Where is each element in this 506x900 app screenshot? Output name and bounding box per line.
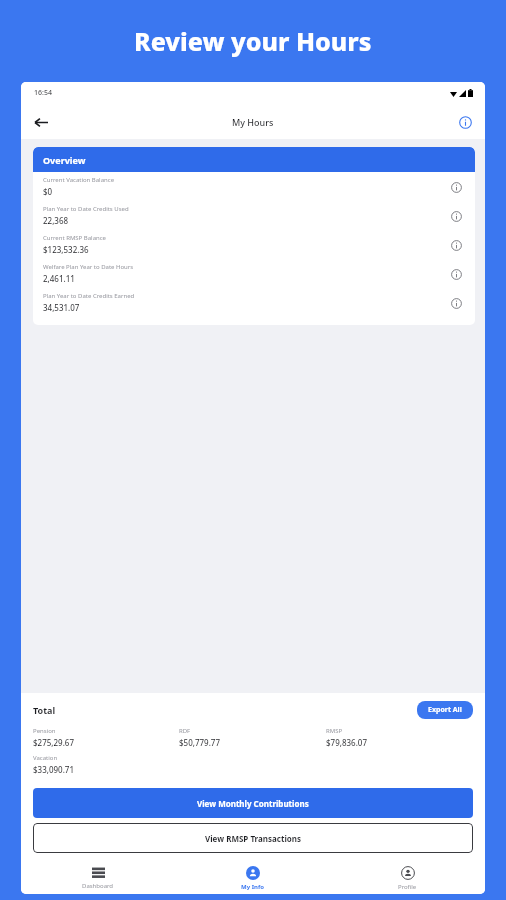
staticText: Current Vacation Balance: [43, 176, 115, 184]
staticText: My Info: [241, 883, 264, 891]
button[interactable]: More info about Welfare Plan Year to Dat…: [447, 265, 465, 283]
staticText: Vacation: [33, 754, 58, 762]
button[interactable]: Export All: [417, 701, 473, 719]
staticText: RMSP: [326, 727, 343, 735]
staticText: RDF: [179, 727, 191, 735]
staticText: $50,779.77: [179, 737, 220, 748]
button[interactable]: More info about Plan Year to Date Credit…: [447, 294, 465, 312]
staticText: Review your Hours: [134, 24, 372, 58]
staticText: Plan Year to Date Credits Earned: [43, 292, 135, 300]
staticText: 22,368: [43, 215, 69, 226]
staticText: Plan Year to Date Credits Used: [43, 205, 129, 213]
staticText: Current RMSP Balance: [43, 234, 106, 242]
button[interactable]: Current RMSP Balance: [33, 230, 475, 259]
staticText: Overview: [43, 154, 86, 166]
button[interactable]: Plan Year to Date Credits Used: [33, 201, 475, 230]
staticText: 16:54: [34, 88, 52, 98]
staticText: $0: [43, 186, 53, 197]
button[interactable]: View Monthly Contributions: [33, 788, 473, 818]
button[interactable]: Current Vacation Balance: [33, 172, 475, 201]
button[interactable]: Plan Year to Date Credits Earned: [33, 288, 475, 317]
staticText: View Monthly Contributions: [197, 798, 309, 809]
button[interactable]: More info about Current Vacation Balance: [447, 178, 465, 196]
button[interactable]: Info: [454, 111, 476, 133]
staticText: $33,090.71: [33, 764, 74, 775]
button[interactable]: More info about Current RMSP Balance: [447, 236, 465, 254]
button[interactable]: Overview: [33, 147, 475, 172]
button[interactable]: My Info: [175, 862, 330, 894]
button[interactable]: Back: [29, 110, 53, 134]
staticText: Dashboard: [82, 882, 114, 890]
staticText: $79,836.07: [326, 737, 367, 748]
staticText: $123,532.36: [43, 244, 89, 255]
button[interactable]: More info about Plan Year to Date Credit…: [447, 207, 465, 225]
button[interactable]: Welfare Plan Year to Date Hours: [33, 259, 475, 288]
button[interactable]: Dashboard: [21, 862, 175, 894]
staticText: Total: [33, 704, 417, 716]
staticText: 34,531.07: [43, 302, 80, 313]
staticText: Welfare Plan Year to Date Hours: [43, 263, 134, 271]
staticText: Pension: [33, 727, 56, 735]
button[interactable]: Profile: [330, 862, 485, 894]
button[interactable]: View RMSP Transactions: [33, 823, 473, 853]
staticText: Profile: [398, 883, 417, 891]
staticText: View RMSP Transactions: [205, 833, 302, 844]
staticText: My Hours: [232, 116, 274, 128]
staticText: 2,461.11: [43, 273, 75, 284]
staticText: Export All: [428, 705, 462, 715]
staticText: $275,29.67: [33, 737, 74, 748]
